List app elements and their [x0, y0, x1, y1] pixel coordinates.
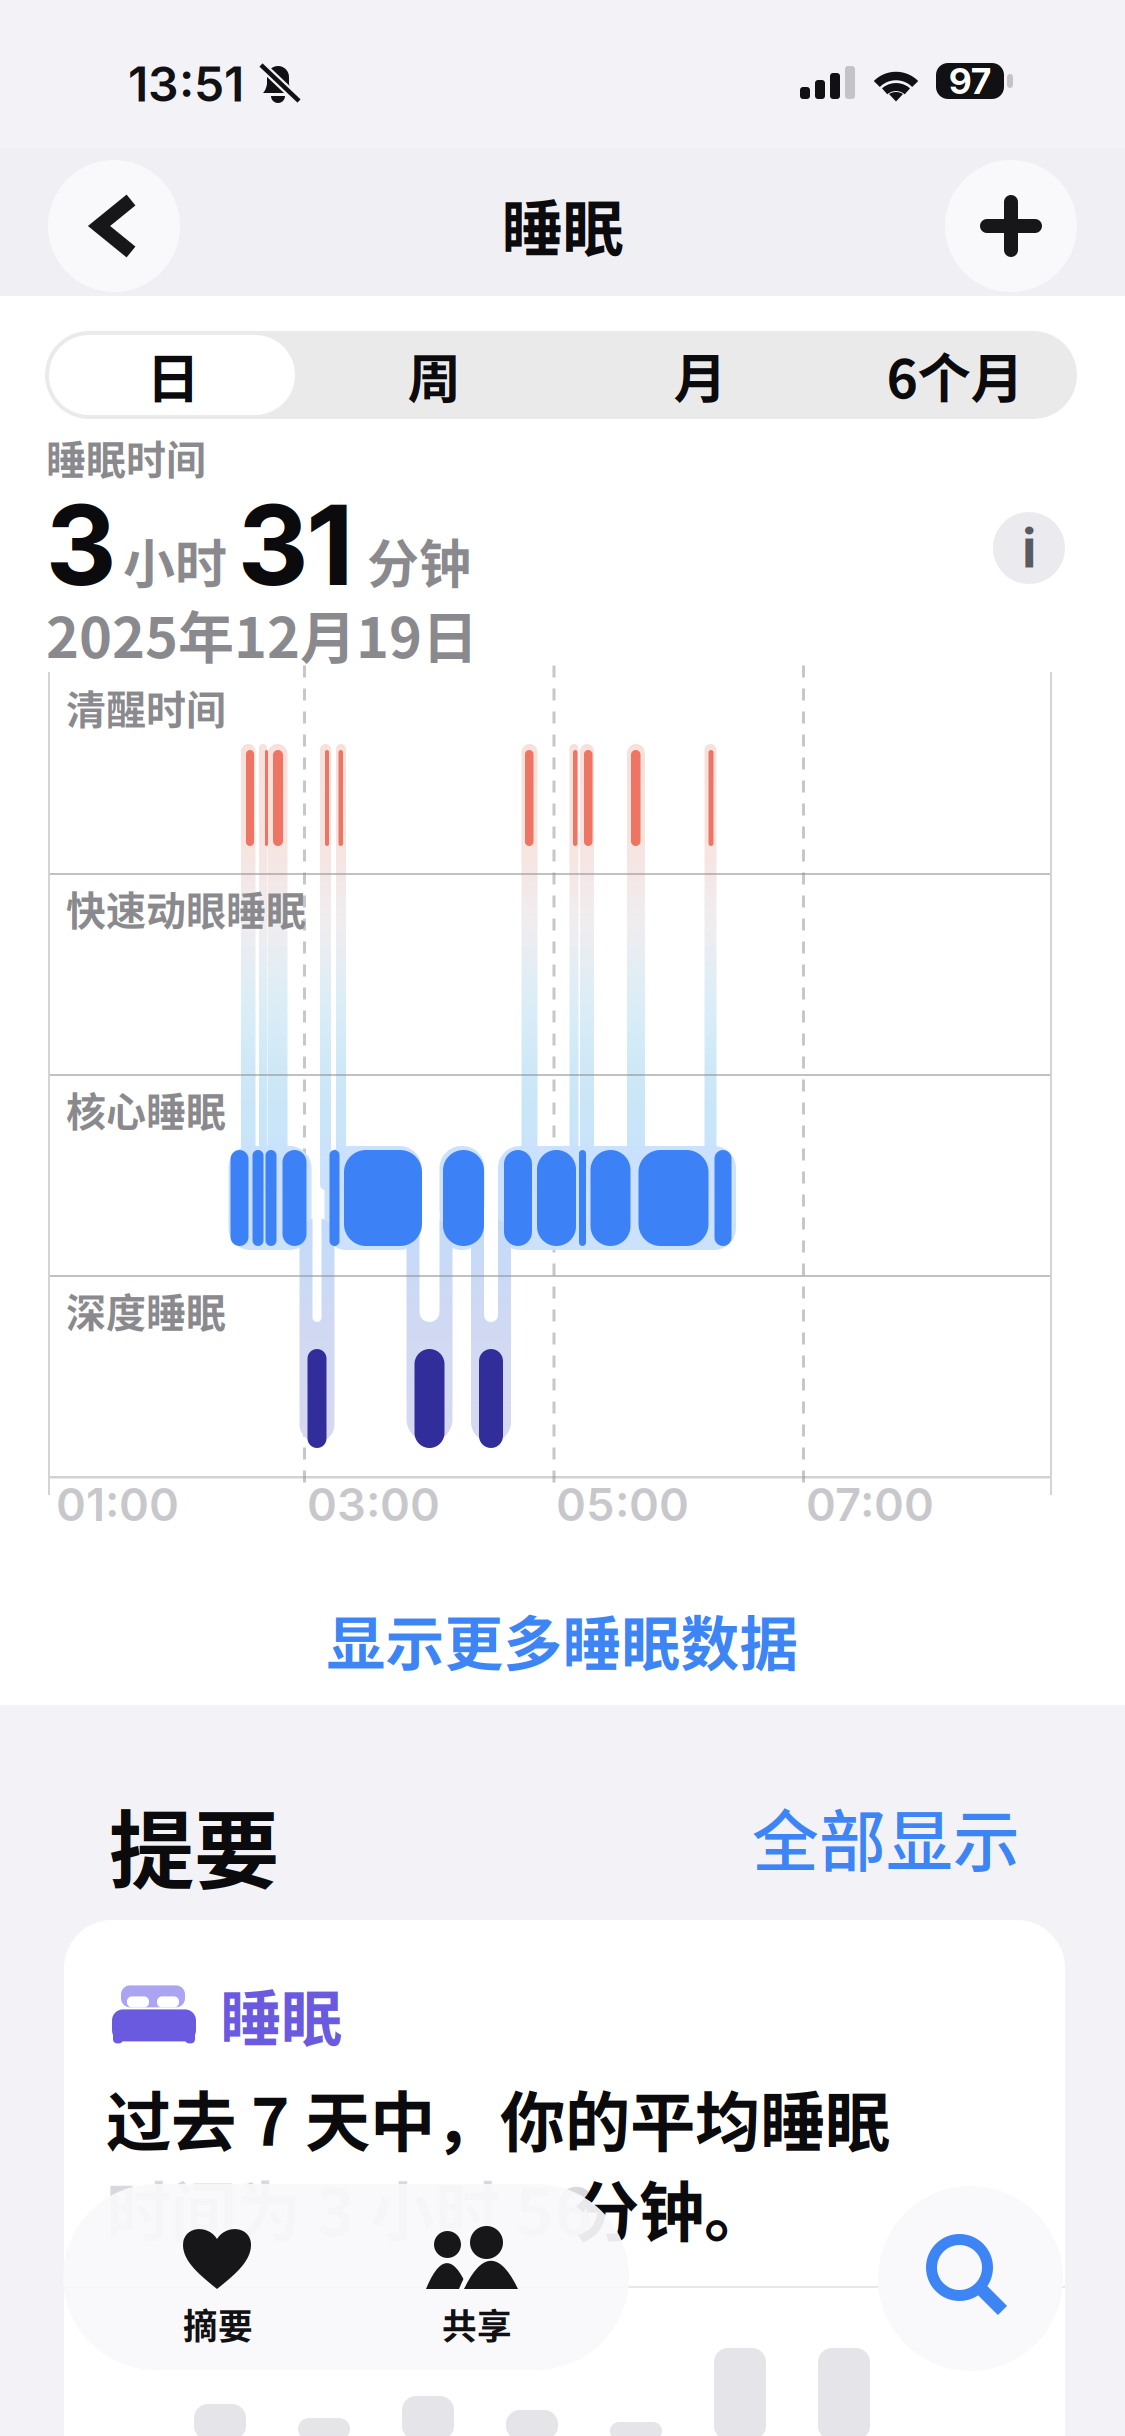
staticText: 提要	[109, 1783, 279, 1907]
staticText: 周	[407, 336, 460, 414]
button[interactable]: 摘要	[63, 2184, 346, 2370]
button[interactable]: 信息	[993, 512, 1065, 584]
staticText: 睡眠时间	[46, 428, 206, 486]
staticText: 摘要	[183, 2299, 253, 2349]
staticText: 01:00	[56, 1477, 179, 1532]
button[interactable]: 共享	[346, 2184, 629, 2370]
staticText: 深度睡眠	[66, 1281, 226, 1339]
button[interactable]: 搜索	[878, 2186, 1063, 2371]
staticText: 31	[239, 479, 352, 611]
staticText: 3	[47, 479, 116, 611]
button[interactable]: 日	[45, 331, 301, 419]
staticText: 05:00	[556, 1477, 689, 1532]
button[interactable]: 月	[567, 331, 833, 419]
staticText: i	[1022, 516, 1036, 580]
staticText: 小时	[123, 523, 227, 598]
staticText: 共享	[442, 2299, 512, 2349]
staticText: 清醒时间	[66, 678, 226, 736]
button[interactable]: 显示更多睡眠数据	[0, 1584, 1125, 1696]
staticText: 过去 7 天中，你的平均睡眠	[106, 2070, 890, 2165]
staticText: 快速动眼睡眠	[66, 879, 306, 937]
staticText: 日	[146, 336, 199, 414]
staticText: 6个月	[886, 336, 1023, 414]
staticText: 分钟	[367, 523, 471, 598]
staticText: 全部显示	[752, 1789, 1020, 1885]
button[interactable]: 周	[301, 331, 567, 419]
staticText: 核心睡眠	[66, 1080, 226, 1138]
staticText: 睡眠	[220, 1970, 342, 2059]
button[interactable]: 全部显示	[752, 1800, 1052, 1874]
button[interactable]: 返回	[48, 160, 180, 292]
button[interactable]: 6个月	[833, 331, 1077, 419]
staticText: 03:00	[307, 1477, 440, 1532]
staticText: 显示更多睡眠数据	[326, 1597, 798, 1682]
button[interactable]: 添加数据	[945, 160, 1077, 292]
staticText: 时间为 3 小时 56	[106, 2160, 593, 2255]
staticText: 13:51	[128, 55, 244, 113]
staticText: 月	[673, 336, 726, 414]
staticText: 07:00	[806, 1477, 934, 1532]
staticText: 睡眠	[501, 180, 623, 269]
staticText: 分钟。	[574, 2160, 769, 2255]
staticText: 2025年12月19日	[46, 593, 478, 674]
staticText: 97	[949, 59, 991, 103]
